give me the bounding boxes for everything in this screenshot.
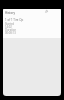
staticText: 1 of 1 Tire Op [5,18,24,22]
staticText: Started [5,22,15,26]
staticText: 00:08:13 [5,31,16,35]
staticText: History [5,11,15,15]
button[interactable]: Search [42,9,50,15]
staticText: Duration [5,28,17,32]
staticText: 14:02 [5,25,12,29]
button[interactable]: 1 of 1 Tire Op [3,17,61,37]
